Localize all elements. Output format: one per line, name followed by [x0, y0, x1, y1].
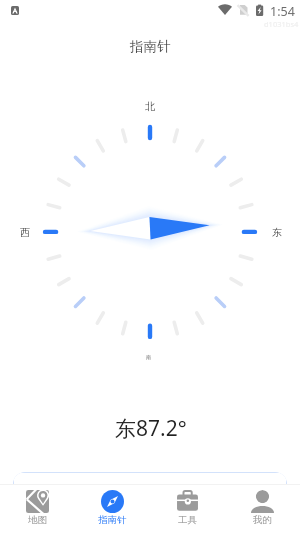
staticText: 东87.2°: [115, 414, 187, 443]
staticText: 工具: [178, 514, 197, 526]
staticText: 南: [146, 354, 151, 360]
staticText: 指南针: [130, 38, 171, 55]
button[interactable]: 我的: [225, 485, 300, 533]
button[interactable]: 地图: [0, 485, 75, 533]
button[interactable]: 工具: [150, 485, 225, 533]
staticText: 西: [20, 226, 30, 239]
staticText: 地图: [28, 514, 47, 526]
staticText: 东: [272, 226, 282, 239]
staticText: 指南针: [98, 514, 127, 526]
staticText: 我的: [253, 514, 272, 526]
staticText: 北: [145, 100, 155, 113]
staticText: d1031bs4: [264, 19, 299, 29]
button[interactable]: 指南针: [75, 485, 150, 533]
staticText: 1:54: [270, 3, 295, 20]
